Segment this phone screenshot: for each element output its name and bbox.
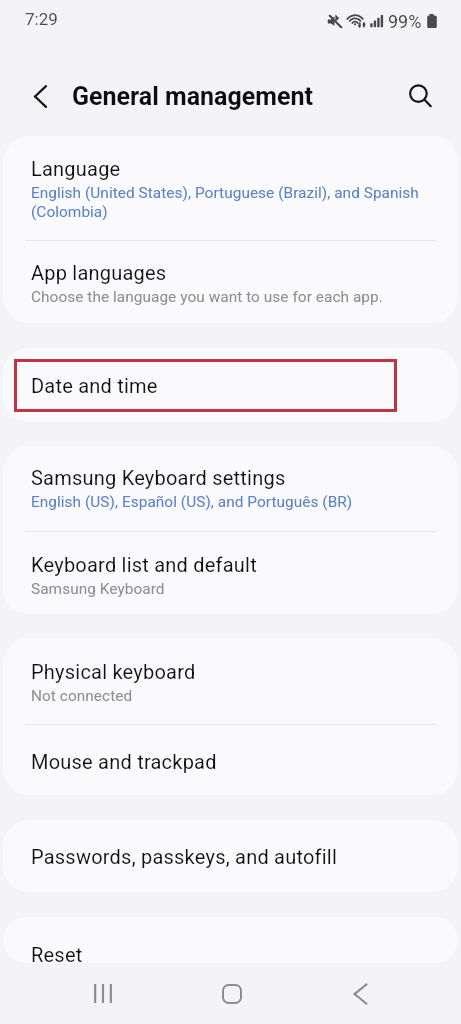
button[interactable]: Recent apps bbox=[73, 963, 133, 1024]
button[interactable]: Reset bbox=[3, 917, 458, 963]
staticText: Keyboard list and default bbox=[31, 553, 257, 576]
button[interactable]: Home bbox=[202, 963, 262, 1024]
staticText: Passwords, passkeys, and autofill bbox=[31, 845, 338, 868]
button[interactable]: Samsung Keyboard settings bbox=[3, 446, 458, 531]
staticText: English (United States), Portuguese (Bra… bbox=[31, 184, 432, 221]
staticText: General management bbox=[72, 82, 313, 111]
staticText: Physical keyboard bbox=[31, 660, 196, 683]
staticText: 99% bbox=[388, 11, 422, 32]
staticText: 7:29 bbox=[25, 9, 58, 29]
staticText: Date and time bbox=[31, 374, 158, 397]
button[interactable]: Physical keyboard bbox=[3, 638, 458, 724]
staticText: Language bbox=[31, 157, 121, 180]
button[interactable]: Mouse and trackpad bbox=[3, 725, 458, 795]
button[interactable]: Back bbox=[330, 963, 390, 1024]
button[interactable]: Keyboard list and default bbox=[3, 532, 458, 614]
button[interactable]: App languages bbox=[3, 241, 458, 323]
button[interactable]: Date and time bbox=[3, 348, 458, 422]
staticText: Samsung Keyboard settings bbox=[31, 466, 286, 489]
button[interactable]: Search bbox=[395, 72, 443, 120]
staticText: Not connected bbox=[31, 687, 133, 705]
staticText: Reset bbox=[31, 943, 83, 963]
staticText: English (US), Español (US), and Portuguê… bbox=[31, 493, 353, 511]
button[interactable]: Language bbox=[3, 136, 458, 240]
staticText: App languages bbox=[31, 261, 167, 284]
button[interactable]: Navigate up bbox=[16, 72, 64, 120]
staticText: Choose the language you want to use for … bbox=[31, 288, 383, 306]
button[interactable]: Passwords, passkeys, and autofill bbox=[3, 820, 458, 892]
staticText: Samsung Keyboard bbox=[31, 580, 165, 598]
staticText: Mouse and trackpad bbox=[31, 750, 217, 773]
